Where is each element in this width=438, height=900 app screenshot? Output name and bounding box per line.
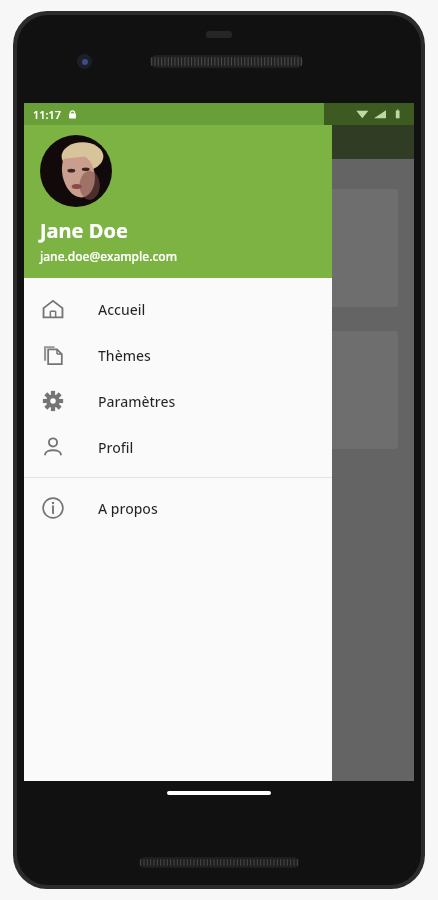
button[interactable]: Paramètres — [24, 378, 332, 424]
staticText: 11:17 — [33, 107, 62, 122]
button[interactable]: Profil — [24, 424, 332, 470]
staticText: Thèmes — [98, 346, 151, 365]
button[interactable]: Thèmes — [24, 332, 332, 378]
staticText: Créer un — [52, 237, 105, 255]
button[interactable]: Accueil — [24, 286, 332, 332]
staticText: Accueil — [98, 300, 146, 319]
button[interactable]: A propos — [24, 485, 332, 531]
staticText: Paramètres — [98, 392, 176, 411]
staticText: Liste des — [52, 379, 106, 397]
staticText: formulaire — [52, 255, 117, 273]
button[interactable]: Créer un — [40, 189, 398, 307]
staticText: jane.doe@example.com — [40, 248, 178, 264]
staticText: Jane Doe — [40, 217, 128, 244]
staticText: A propos — [98, 499, 158, 518]
staticText: réponses — [52, 397, 109, 415]
staticText: Profil — [98, 438, 134, 457]
button[interactable]: Liste des — [40, 331, 398, 449]
